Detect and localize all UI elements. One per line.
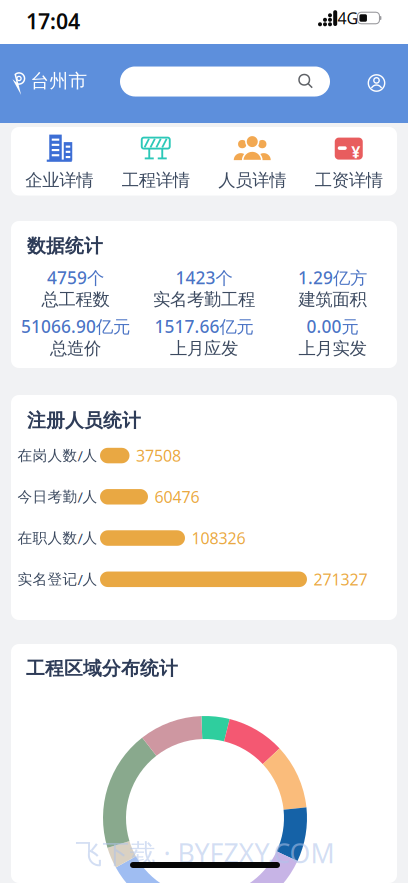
staticText: 4G [337,7,358,29]
staticText: 60476 [154,486,199,507]
button[interactable]: 企业详情 [11,127,107,195]
staticText: / [77,570,82,589]
staticText: 人 [82,488,97,506]
staticText: 上月应发 [170,338,238,359]
staticText: 1423个 [175,266,232,289]
staticText: 工程区域分布统计 [26,657,178,680]
staticText: 注册人员统计 [27,409,141,432]
staticText: 实名登记 [17,570,77,588]
staticText: 271327 [313,569,367,590]
staticText: / [77,446,82,465]
staticText: 建筑面积 [299,289,367,310]
staticText: / [77,487,82,507]
staticText: 人 [82,446,97,464]
staticText: 实名考勤工程 [153,289,255,310]
button[interactable]: 工程详情 [107,127,204,195]
staticText: 17:04 [26,7,80,35]
staticText: 1517.66亿元 [154,315,253,338]
staticText: 人 [82,529,97,547]
staticText: 总造价 [50,338,101,359]
staticText: 企业详情 [25,170,93,191]
button[interactable]: 搜索 [120,66,330,96]
staticText: 飞下载 · BYFZXY.COM [75,835,334,871]
staticText: 总工程数 [41,289,109,310]
staticText: 108326 [191,527,245,549]
staticText: 数据统计 [27,234,103,257]
staticText: 4759个 [47,266,104,289]
staticText: 37508 [136,445,181,466]
staticText: 1.29亿方 [298,266,367,289]
staticText: 在岗人数 [17,446,77,464]
staticText: 上月实发 [299,338,367,359]
button[interactable]: 人员详情 [204,127,300,195]
staticText: 人员详情 [218,170,286,191]
staticText: 工资详情 [315,170,383,191]
staticText: 51066.90亿元 [21,315,130,338]
staticText: 0.00元 [307,315,359,338]
button[interactable]: ¥ [300,127,397,195]
staticText: 工程详情 [122,170,190,191]
staticText: ¥ [351,141,360,163]
button[interactable]: 我的 [367,74,385,92]
staticText: 在职人数 [17,529,77,547]
staticText: 台州市 [30,69,87,92]
staticText: / [77,528,82,548]
staticText: 人 [82,570,97,588]
button[interactable]: 选择城市 [12,69,87,92]
staticText: 今日考勤 [17,488,77,506]
